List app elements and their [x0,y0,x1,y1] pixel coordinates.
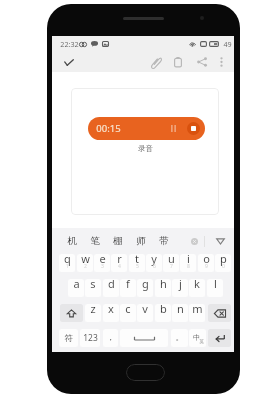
button[interactable]: 带 [152,228,175,254]
staticText: 。 [175,332,184,343]
button[interactable]: 00:15 [88,117,205,140]
button[interactable]: 机 [60,228,83,254]
staticText: m [192,304,203,316]
button[interactable]: Attach [146,52,166,72]
staticText: 7 [170,263,173,270]
staticText: 1 [66,263,69,270]
button[interactable]: Backspace [208,304,231,322]
staticText: 0 [222,263,225,270]
staticText: h [160,279,167,291]
button[interactable]: 棚 [106,228,129,254]
button[interactable]: Comma [103,329,118,347]
button[interactable]: Clear input [184,228,204,254]
button[interactable]: n [172,304,188,322]
staticText: x [108,304,114,316]
staticText: 带 [159,235,169,247]
button[interactable]: a [68,279,84,297]
staticText: b [160,304,167,316]
button[interactable]: i [180,254,196,272]
staticText: 录音 [138,144,153,153]
staticText: p [220,254,227,266]
staticText: 4 [118,263,121,270]
button[interactable]: m [189,304,205,322]
other: Stop recording [187,122,200,135]
button[interactable]: d [103,279,119,297]
button[interactable]: x [103,304,119,322]
staticText: 笔 [90,235,100,247]
button[interactable]: r [111,254,127,272]
button[interactable]: Done [59,52,79,72]
button[interactable]: Symbols [59,329,78,347]
button[interactable]: p [215,254,231,272]
button[interactable]: Space [120,329,168,347]
staticText: l [214,279,217,291]
staticText: y [151,254,157,266]
staticText: n [177,304,184,316]
staticText: 123 [83,332,98,344]
staticText: r [117,254,122,266]
button[interactable]: w [77,254,93,272]
button[interactable]: c [120,304,136,322]
button[interactable]: q [59,254,75,272]
staticText: 师 [136,235,146,247]
staticText: ， [106,332,115,343]
staticText: z [90,304,96,316]
button[interactable]: j [172,279,188,297]
staticText: 49 [223,39,232,49]
staticText: 5 [136,263,139,270]
button[interactable]: More options [213,52,229,72]
staticText: 9 [205,263,208,270]
button[interactable]: y [146,254,162,272]
button[interactable]: t [129,254,145,272]
button[interactable]: Shift [60,304,83,322]
button[interactable]: 师 [129,228,152,254]
button[interactable]: o [198,254,214,272]
button[interactable]: Enter [208,329,231,347]
button[interactable]: l [207,279,223,297]
staticText: a [73,279,80,291]
button[interactable]: h [155,279,171,297]
button[interactable]: Language [189,329,206,347]
staticText: 00:15 [96,122,121,135]
button[interactable]: e [94,254,110,272]
button[interactable]: z [85,304,101,322]
button[interactable]: Numbers [80,329,100,347]
staticText: c [125,304,131,316]
staticText: 英 [199,339,204,345]
staticText: j [179,279,182,291]
button[interactable]: 笔 [83,228,106,254]
button[interactable]: Share [192,52,212,72]
staticText: 机 [67,235,77,247]
button[interactable]: b [155,304,171,322]
staticText: t [135,254,139,266]
staticText: u [168,254,175,266]
button[interactable]: g [137,279,153,297]
button[interactable]: v [137,304,153,322]
staticText: e [99,254,106,266]
staticText: k [194,279,200,291]
button[interactable]: Hide keyboard [209,228,231,254]
staticText: q [64,254,71,266]
staticText: d [108,279,115,291]
button[interactable]: f [120,279,136,297]
staticText: i [187,254,190,266]
staticText: 棚 [113,235,123,247]
staticText: 2 [84,263,87,270]
staticText: g [142,279,149,291]
staticText: v [142,304,148,316]
staticText: 6 [153,263,156,270]
staticText: f [126,279,130,291]
staticText: 3 [101,263,104,270]
button[interactable]: k [189,279,205,297]
staticText: 符 [64,333,73,344]
staticText: w [81,254,90,266]
button[interactable]: s [85,279,101,297]
staticText: o [203,254,210,266]
staticText: 22:32 [60,39,79,49]
button[interactable]: Paste [168,52,188,72]
staticText: 中 [193,333,200,342]
staticText: s [90,279,96,291]
button[interactable]: Period [171,329,188,347]
button[interactable]: u [163,254,179,272]
staticText: 8 [187,263,190,270]
